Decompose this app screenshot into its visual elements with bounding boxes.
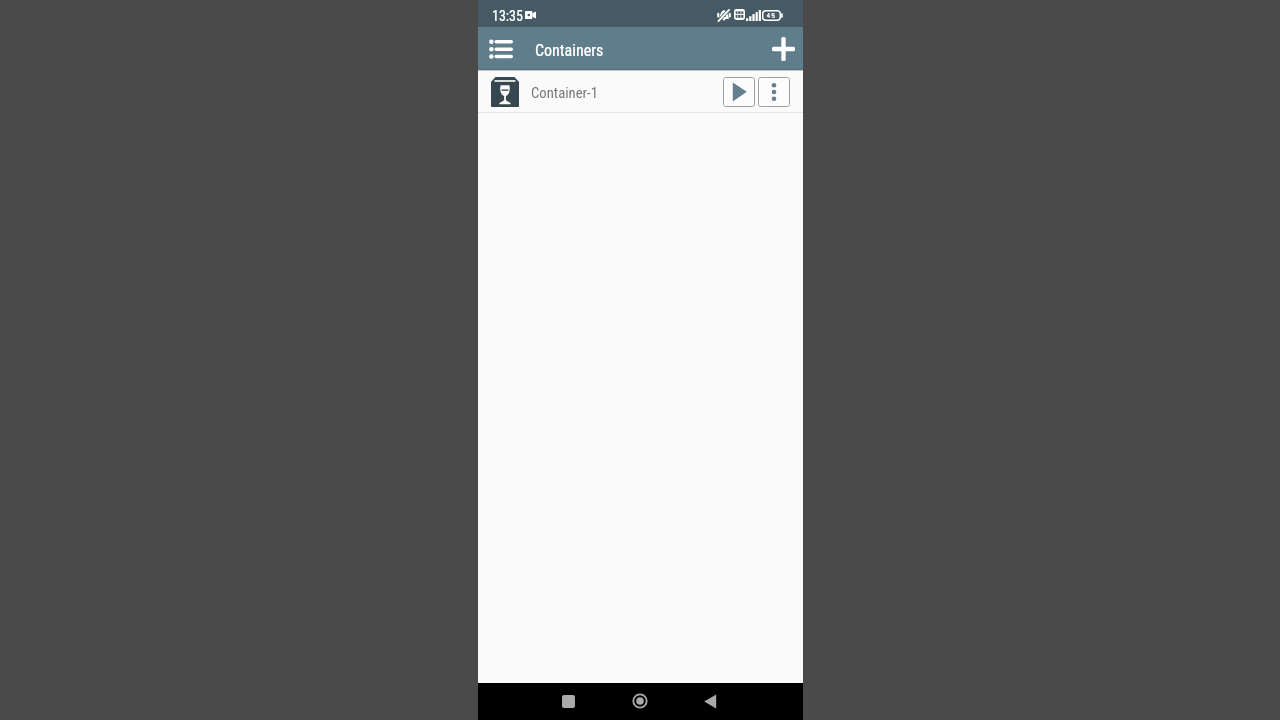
- button[interactable]: Home: [625, 686, 655, 716]
- button[interactable]: Recent apps: [553, 686, 583, 716]
- button[interactable]: Open navigation menu: [485, 32, 517, 64]
- staticText: Container-1: [531, 84, 598, 101]
- button[interactable]: [478, 71, 803, 113]
- staticText: 13:35: [492, 8, 523, 24]
- button[interactable]: More options: [758, 77, 790, 107]
- button[interactable]: Add container: [767, 33, 799, 65]
- staticText: Containers: [535, 41, 604, 60]
- button[interactable]: Start container: [723, 77, 755, 107]
- button[interactable]: Back: [695, 686, 725, 716]
